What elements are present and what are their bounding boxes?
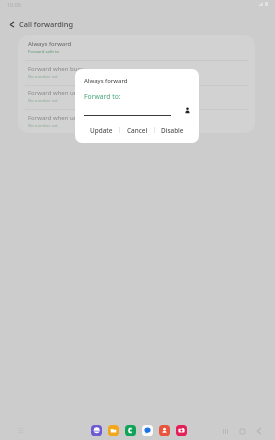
button[interactable]: Back bbox=[253, 425, 265, 437]
staticText: Always forward bbox=[28, 40, 72, 48]
staticText: 10:00 bbox=[7, 1, 21, 8]
button[interactable]: Cancel bbox=[120, 123, 154, 137]
staticText: Cancel bbox=[127, 126, 148, 135]
button[interactable]: Forward when unanswered bbox=[18, 84, 255, 109]
button[interactable]: Messages bbox=[142, 425, 153, 436]
staticText: Update bbox=[90, 126, 113, 135]
staticText: Forward when busy bbox=[28, 65, 84, 73]
button[interactable]: Choose contact bbox=[182, 105, 192, 115]
staticText: No number set bbox=[28, 74, 58, 80]
button[interactable]: Recents bbox=[219, 425, 231, 437]
staticText: Disable bbox=[161, 126, 184, 135]
staticText: Call forwarding bbox=[19, 19, 74, 29]
button[interactable]: Navigate up bbox=[4, 17, 19, 31]
button[interactable]: Apps bbox=[16, 426, 26, 436]
button[interactable]: Internet bbox=[91, 425, 102, 436]
button[interactable]: Update bbox=[84, 123, 119, 137]
button[interactable]: Disable bbox=[155, 123, 189, 137]
button[interactable]: Always forward bbox=[18, 35, 255, 60]
button[interactable]: Forward when busy bbox=[18, 60, 255, 85]
button[interactable]: Phone bbox=[125, 425, 136, 436]
staticText: Forward when unanswered bbox=[28, 89, 105, 97]
button[interactable]: Forward when unreachable bbox=[18, 109, 255, 133]
staticText: No number set bbox=[28, 123, 58, 129]
button[interactable]: Contacts bbox=[159, 425, 170, 436]
button[interactable]: Camera bbox=[176, 425, 187, 436]
staticText: Forward calls to bbox=[28, 49, 60, 55]
button[interactable]: My Files bbox=[108, 425, 119, 436]
staticText: Always forward bbox=[84, 77, 128, 85]
staticText: Forward when unreachable bbox=[28, 114, 106, 122]
button[interactable]: Home bbox=[236, 425, 248, 437]
staticText: Forward to: bbox=[84, 92, 121, 101]
staticText: No number set bbox=[28, 98, 58, 104]
